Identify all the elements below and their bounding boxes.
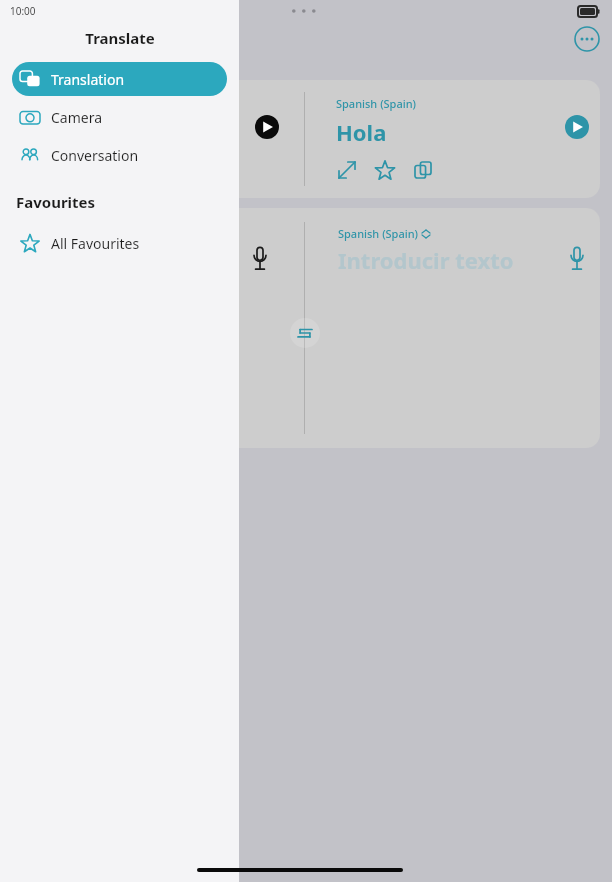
staticText: Favourites — [16, 192, 96, 212]
button[interactable]: Favourite — [374, 159, 396, 181]
button[interactable]: Play translation — [565, 115, 589, 139]
button[interactable]: Translation — [12, 62, 227, 96]
staticText: Spanish (Spain) — [338, 226, 419, 241]
staticText: 10:00 — [10, 4, 36, 18]
button[interactable]: Conversation — [12, 138, 227, 172]
button[interactable]: Camera — [12, 100, 227, 134]
button[interactable]: Play source — [255, 115, 279, 139]
button[interactable]: Expand — [336, 159, 358, 181]
staticText: Translation — [51, 70, 125, 89]
button[interactable]: Copy — [412, 159, 434, 181]
button[interactable]: Swap languages — [290, 318, 320, 348]
button[interactable]: Spanish (Spain) — [338, 226, 430, 241]
staticText: Spanish (Spain) — [336, 96, 417, 111]
staticText: Conversation — [51, 146, 139, 165]
button[interactable]: All Favourites — [12, 226, 227, 260]
staticText: Translate — [85, 28, 155, 48]
staticText: Camera — [51, 108, 103, 127]
button[interactable]: Microphone target — [567, 244, 587, 272]
staticText: Hola — [336, 117, 387, 147]
button[interactable]: Microphone source — [250, 244, 270, 272]
staticText: All Favourites — [51, 234, 140, 253]
staticText: Introducir texto — [338, 245, 514, 275]
button[interactable]: More options — [574, 26, 600, 52]
